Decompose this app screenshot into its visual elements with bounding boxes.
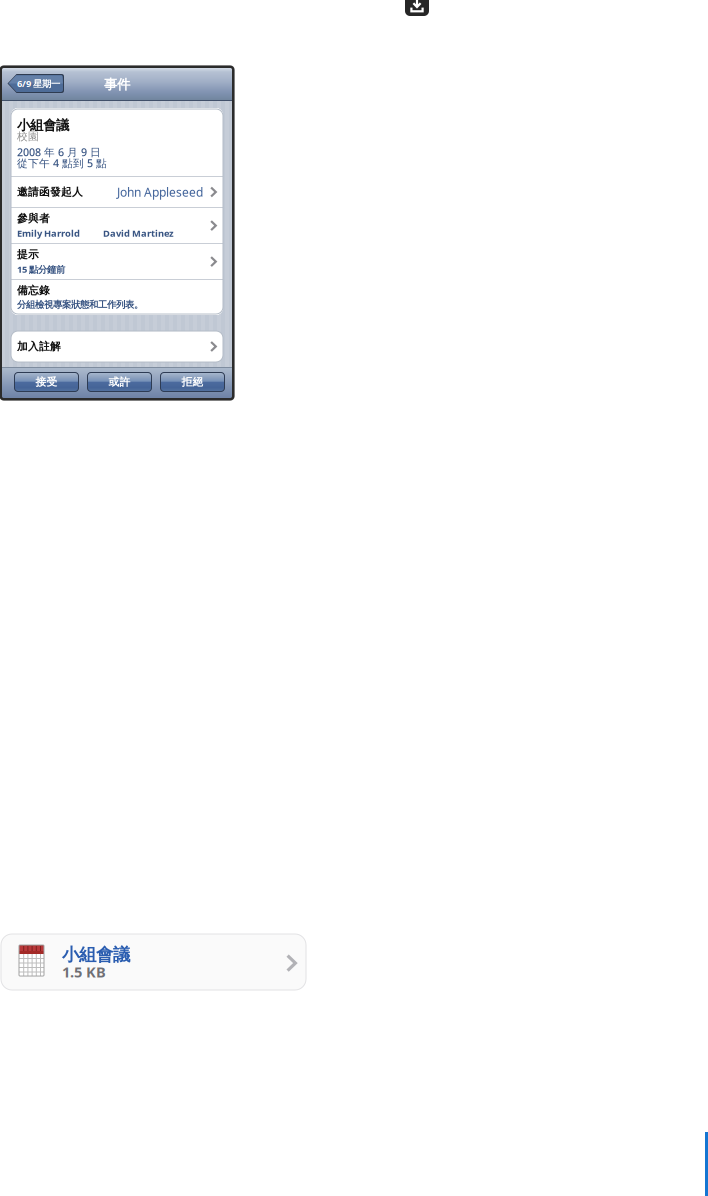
staticText: 加入註解 [17, 340, 61, 353]
staticText: 參與者 [17, 212, 50, 225]
button[interactable]: 邀請函發起人 [11, 177, 223, 207]
staticText: David Martinez [103, 227, 174, 239]
staticText: 小組會議 [17, 117, 69, 133]
staticText: 事件 [104, 76, 130, 93]
staticText: 從下午 4 點到 5 點 [17, 156, 107, 170]
staticText: 小組會議 [62, 944, 130, 965]
button[interactable]: 或許 [87, 372, 152, 392]
staticText: 15 點分鐘前 [17, 263, 65, 275]
staticText: 2008 年 6 月 9 日 [17, 145, 101, 159]
button[interactable]: 拒絕 [160, 372, 225, 392]
staticText: 邀請函發起人 [17, 185, 83, 198]
staticText: John Appleseed [117, 184, 203, 200]
staticText: Emily Harrold [17, 227, 80, 239]
staticText: 分組檢視專案狀態和工作列表。 [17, 299, 143, 310]
button[interactable]: 提示 [11, 244, 223, 279]
staticText: 提示 [17, 248, 39, 261]
button[interactable]: 小組會議 [1, 934, 306, 990]
button[interactable]: 6/9 星期一 [7, 74, 64, 93]
button[interactable]: 接受 [14, 372, 79, 392]
button[interactable]: 加入註解 [11, 331, 223, 362]
staticText: 6/9 星期一 [17, 77, 60, 90]
staticText: 校園 [17, 130, 39, 143]
staticText: 拒絕 [181, 375, 203, 388]
staticText: 1.5 KB [62, 962, 106, 981]
button[interactable]: 參與者 [11, 208, 223, 243]
staticText: 接受 [35, 375, 57, 388]
staticText: 備忘錄 [17, 284, 50, 297]
button[interactable]: Download [405, 0, 429, 16]
staticText: 或許 [108, 375, 130, 388]
